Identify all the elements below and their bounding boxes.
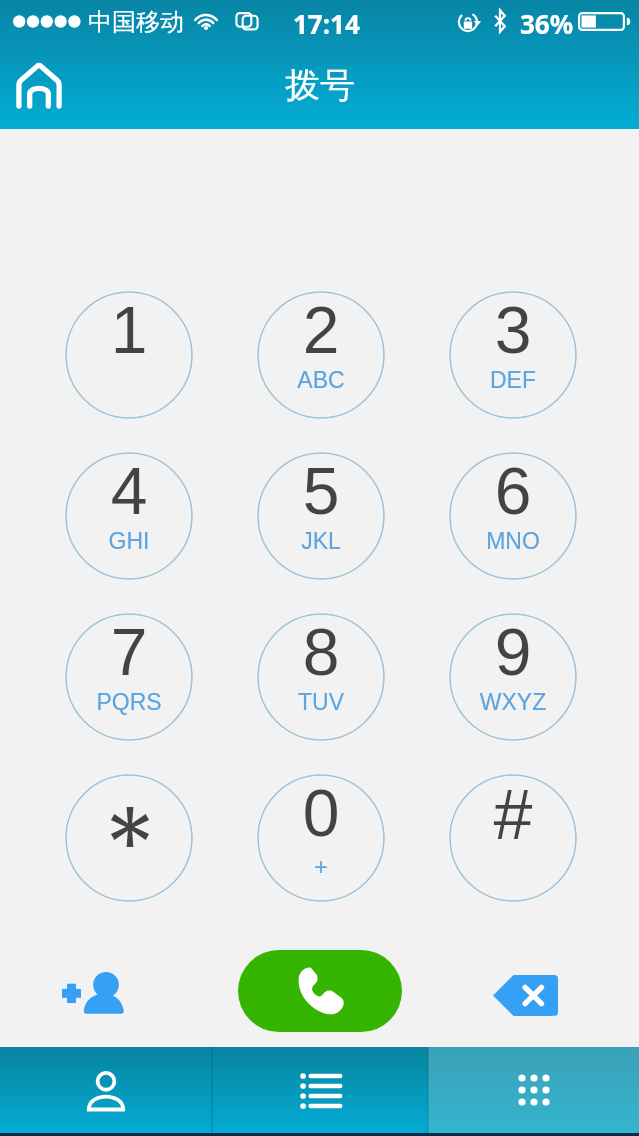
staticText: 拨号 <box>285 63 355 107</box>
staticText: GHI <box>65 528 193 554</box>
staticText: 0 <box>257 776 385 850</box>
staticText: 9 <box>449 615 577 689</box>
button[interactable]: 3 <box>449 291 577 419</box>
button[interactable]: 8 <box>257 613 385 741</box>
staticText: ABC <box>257 367 385 393</box>
button[interactable]: Dialpad <box>428 1047 639 1133</box>
staticText: 中国移动 <box>88 7 184 37</box>
staticText: 4 <box>65 454 193 528</box>
staticText: 7 <box>65 615 193 689</box>
button[interactable]: 4 <box>65 452 193 580</box>
staticText: PQRS <box>65 689 193 715</box>
button[interactable]: # <box>449 774 577 902</box>
staticText: JKL <box>257 528 385 554</box>
button[interactable]: 5 <box>257 452 385 580</box>
button[interactable]: 2 <box>257 291 385 419</box>
staticText: 36% <box>520 6 574 41</box>
staticText: MNO <box>449 528 577 554</box>
button[interactable]: 7 <box>65 613 193 741</box>
button[interactable]: Contacts <box>0 1047 212 1133</box>
staticText: 1 <box>65 293 193 367</box>
button[interactable]: 9 <box>449 613 577 741</box>
staticText: 5 <box>257 454 385 528</box>
button[interactable]: Add contact <box>54 964 146 1030</box>
staticText: 2 <box>257 293 385 367</box>
staticText: 6 <box>449 454 577 528</box>
staticText: 8 <box>257 615 385 689</box>
staticText: # <box>449 776 577 854</box>
button[interactable]: Call <box>238 950 402 1032</box>
button[interactable]: 6 <box>449 452 577 580</box>
button[interactable]: 0 <box>257 774 385 902</box>
staticText: + <box>257 854 385 880</box>
button[interactable]: Home <box>9 58 69 118</box>
staticText: TUV <box>257 689 385 715</box>
button[interactable]: Backspace <box>493 975 558 1016</box>
staticText: WXYZ <box>449 689 577 715</box>
button[interactable]: 1 <box>65 291 193 419</box>
staticText: 3 <box>449 293 577 367</box>
staticText: DEF <box>449 367 577 393</box>
button[interactable] <box>65 774 193 902</box>
staticText: 17:14 <box>293 6 360 41</box>
button[interactable]: Call log <box>212 1047 428 1133</box>
